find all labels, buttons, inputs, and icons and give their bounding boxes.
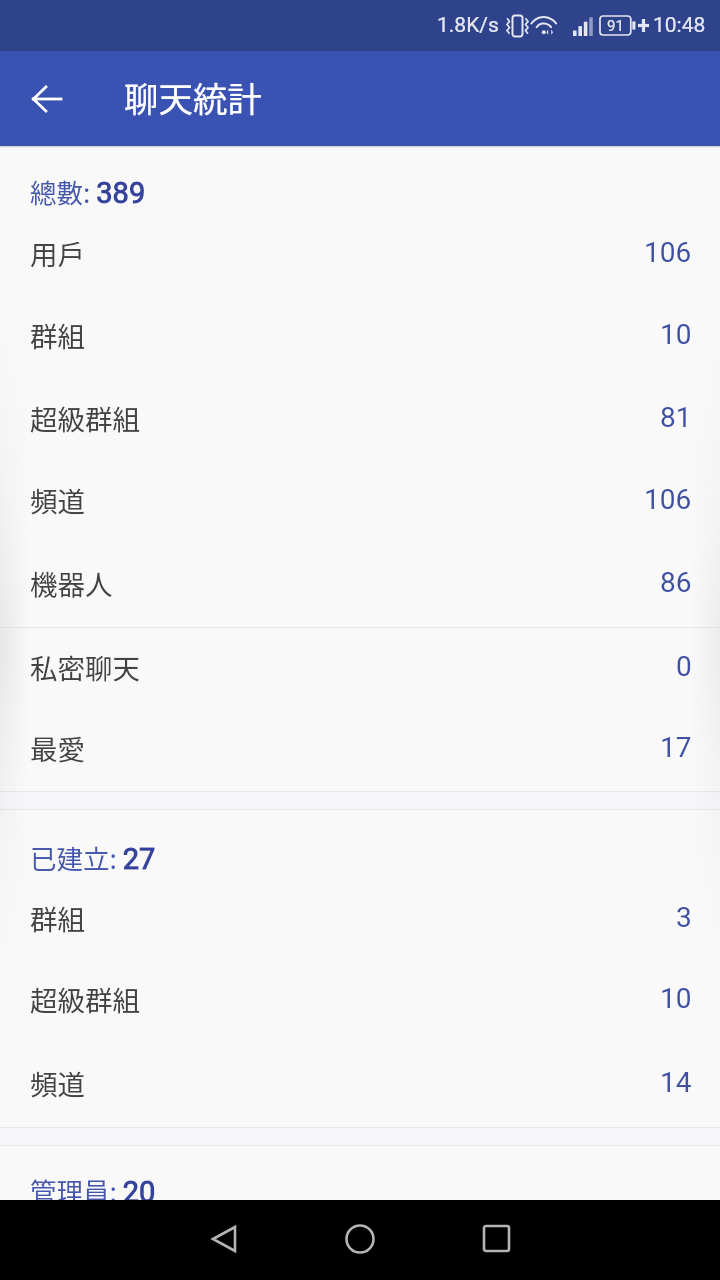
staticText: 1.8K/s <box>437 13 499 38</box>
button[interactable]: Back <box>14 67 78 131</box>
staticText: 最愛 <box>30 728 85 768</box>
staticText: 10:48 <box>653 13 706 38</box>
staticText: 群組 <box>30 315 85 355</box>
button[interactable]: 群組 <box>0 296 720 378</box>
button[interactable]: 私密聊天 <box>0 628 720 710</box>
staticText: 10 <box>660 318 692 351</box>
staticText: 91 <box>607 17 624 35</box>
staticText: 86 <box>660 566 692 599</box>
staticText: 群組 <box>30 898 85 938</box>
staticText: 超級群組 <box>30 398 140 438</box>
staticText: 總數: 389 <box>30 172 146 210</box>
button[interactable]: Home <box>312 1200 408 1277</box>
button[interactable]: 頻道 <box>0 462 720 543</box>
staticText: 17 <box>660 731 692 764</box>
button[interactable]: 超級群組 <box>0 960 720 1043</box>
staticText: 3 <box>676 901 692 934</box>
button[interactable]: 超級群組 <box>0 378 720 462</box>
staticText: 10 <box>660 982 692 1015</box>
staticText: 頻道 <box>30 480 85 520</box>
staticText: 已建立: 27 <box>30 838 156 876</box>
staticText: 私密聊天 <box>30 647 140 687</box>
staticText: 超級群組 <box>30 979 140 1019</box>
button[interactable]: Recents <box>448 1200 544 1277</box>
staticText: 0 <box>676 650 692 683</box>
staticText: 81 <box>660 401 692 434</box>
staticText: 106 <box>644 483 692 516</box>
staticText: 14 <box>660 1066 692 1099</box>
button[interactable]: 頻道 <box>0 1043 720 1127</box>
staticText: 機器人 <box>30 563 113 603</box>
staticText: 管理員: 20 <box>30 1171 156 1209</box>
button[interactable]: Back <box>176 1200 272 1277</box>
button[interactable]: 用戶 <box>0 214 720 296</box>
staticText: 頻道 <box>30 1063 85 1103</box>
button[interactable]: 機器人 <box>0 543 720 627</box>
button[interactable]: 群組 <box>0 880 720 960</box>
staticText: 106 <box>644 236 692 269</box>
staticText: 用戶 <box>30 233 85 273</box>
staticText: 聊天統計 <box>124 72 262 122</box>
button[interactable]: 最愛 <box>0 710 720 791</box>
